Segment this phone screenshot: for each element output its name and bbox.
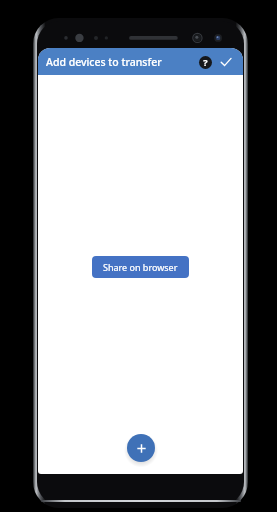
staticText: Share on browser: [103, 261, 178, 273]
button[interactable]: Done: [215, 51, 237, 73]
button[interactable]: Share on browser: [92, 256, 189, 278]
button[interactable]: Help: [195, 52, 215, 72]
staticText: Add devices to transfer: [46, 55, 162, 69]
button[interactable]: Add device: [127, 434, 155, 462]
staticText: ?: [203, 56, 208, 68]
